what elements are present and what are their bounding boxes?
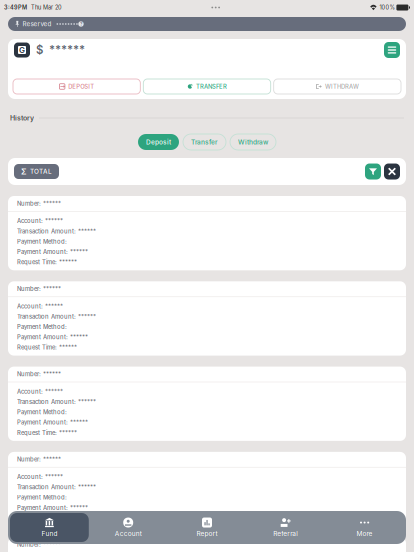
staticText: More [357,529,373,537]
button[interactable]: Filter [365,163,381,179]
staticText: Report [196,529,217,537]
button[interactable]: Report [168,513,246,542]
button[interactable]: Referral [246,513,325,542]
staticText: Transfer [191,138,218,146]
button[interactable]: Withdraw [230,134,276,150]
staticText: Reserved [20,20,51,28]
button[interactable]: Account [89,513,168,542]
staticText: Payment Amount: ****** [17,504,88,511]
staticText: WITHDRAW [325,83,359,90]
staticText: Transaction Amount: ****** [17,484,96,491]
button[interactable]: TRANSFER [143,79,271,94]
staticText: Referral [273,529,298,537]
staticText: Request Time: ****** [17,259,77,266]
staticText: Deposit [146,138,171,146]
staticText: Payment Method: [17,238,67,245]
staticText: Transaction Amount: ****** [17,228,96,235]
staticText: Account: ****** [17,388,63,395]
staticText: Withdraw [238,138,268,146]
staticText: Σ [21,167,27,176]
staticText: Account [115,529,142,537]
staticText: Account: ****** [17,303,63,310]
staticText: ? [80,21,82,27]
button[interactable]: Transfer [183,134,226,150]
staticText: Transaction Amount: ****** [17,398,96,405]
staticText: Thu Mar 20 [27,4,62,11]
button[interactable]: Tools [384,163,400,179]
staticText: Payment Method: [17,494,67,501]
button[interactable]: Deposit [138,134,179,150]
staticText: Request Time: ****** [17,429,77,436]
staticText: Request Time: ****** [17,514,77,522]
staticText: Account: ****** [17,217,63,224]
staticText: Payment Amount: ****** [17,248,88,255]
button[interactable]: Menu [384,42,400,58]
staticText: History [10,114,34,122]
staticText: Request Time: ****** [17,344,77,351]
staticText: Number: ****** [17,541,61,548]
staticText: 100% [377,4,394,11]
staticText: TOTAL [30,168,52,175]
staticText: Number: ****** [17,285,61,292]
staticText: 3:49PM [4,4,27,11]
staticText: Number: ****** [17,200,61,207]
button[interactable]: More [325,513,404,542]
staticText: Payment Amount: ****** [17,419,88,426]
staticText: Number: ****** [17,456,61,463]
button[interactable]: DEPOSIT [13,79,140,94]
staticText: $ [30,43,43,57]
staticText: Payment Amount: ****** [17,334,88,341]
staticText: Payment Method: [17,409,67,416]
staticText: Account: ****** [17,473,63,480]
staticText: Number: ****** [17,371,61,378]
button[interactable]: Fund [10,513,89,542]
staticText: G [19,45,25,55]
staticText: DEPOSIT [68,83,94,90]
button[interactable]: WITHDRAW [274,79,401,94]
staticText: Payment Method: [17,323,67,330]
staticText: Transaction Amount: ****** [17,313,96,320]
staticText: TRANSFER [196,83,227,90]
staticText: ****** [43,43,85,57]
staticText: Fund [41,529,57,537]
